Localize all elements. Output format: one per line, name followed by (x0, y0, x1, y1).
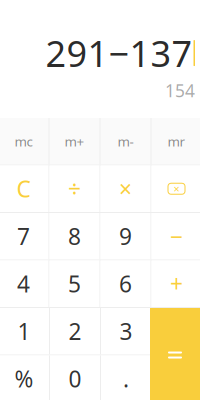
button[interactable]: 4 (0, 260, 48, 307)
staticText: 2 (68, 316, 81, 346)
staticText: m- (117, 132, 133, 150)
staticText: − (170, 221, 183, 251)
button[interactable]: . (101, 355, 151, 400)
button[interactable]: % (0, 355, 49, 400)
button[interactable]: ÷ (49, 165, 99, 212)
button[interactable]: 8 (49, 213, 99, 259)
button[interactable]: Backspace (151, 165, 200, 212)
button[interactable]: + (151, 260, 200, 307)
button[interactable]: 1 (0, 308, 49, 354)
button[interactable]: × (100, 165, 150, 212)
staticText: 6 (119, 269, 132, 299)
staticText: . (123, 364, 129, 394)
staticText: ÷ (68, 174, 81, 204)
staticText: 0 (68, 364, 81, 394)
staticText: m+ (64, 132, 84, 150)
staticText: 4 (17, 269, 30, 299)
button[interactable]: mc (0, 118, 48, 164)
staticText: % (14, 364, 33, 394)
staticText: mr (167, 132, 185, 150)
button[interactable]: Equals (150, 308, 200, 400)
staticText: 9 (119, 221, 132, 251)
button[interactable]: 3 (101, 308, 151, 354)
button[interactable]: m- (100, 118, 150, 164)
button[interactable]: m+ (49, 118, 99, 164)
button[interactable]: C (0, 165, 48, 212)
staticText: C (16, 174, 30, 204)
button[interactable]: 0 (50, 355, 100, 400)
staticText: + (170, 269, 183, 299)
staticText: 1 (17, 316, 30, 346)
button[interactable]: − (151, 213, 200, 259)
staticText: × (173, 182, 179, 196)
staticText: 7 (17, 221, 30, 251)
staticText: 3 (119, 316, 132, 346)
button[interactable]: 2 (50, 308, 100, 354)
staticText: 8 (68, 221, 81, 251)
staticText: 291−137 (45, 29, 192, 77)
staticText: 5 (68, 269, 81, 299)
button[interactable]: 6 (100, 260, 150, 307)
staticText: 154 (165, 79, 195, 102)
button[interactable]: 9 (100, 213, 150, 259)
staticText: × (119, 174, 132, 204)
button[interactable]: 7 (0, 213, 48, 259)
button[interactable]: mr (151, 118, 200, 164)
staticText: mc (14, 132, 32, 150)
button[interactable]: 5 (49, 260, 99, 307)
